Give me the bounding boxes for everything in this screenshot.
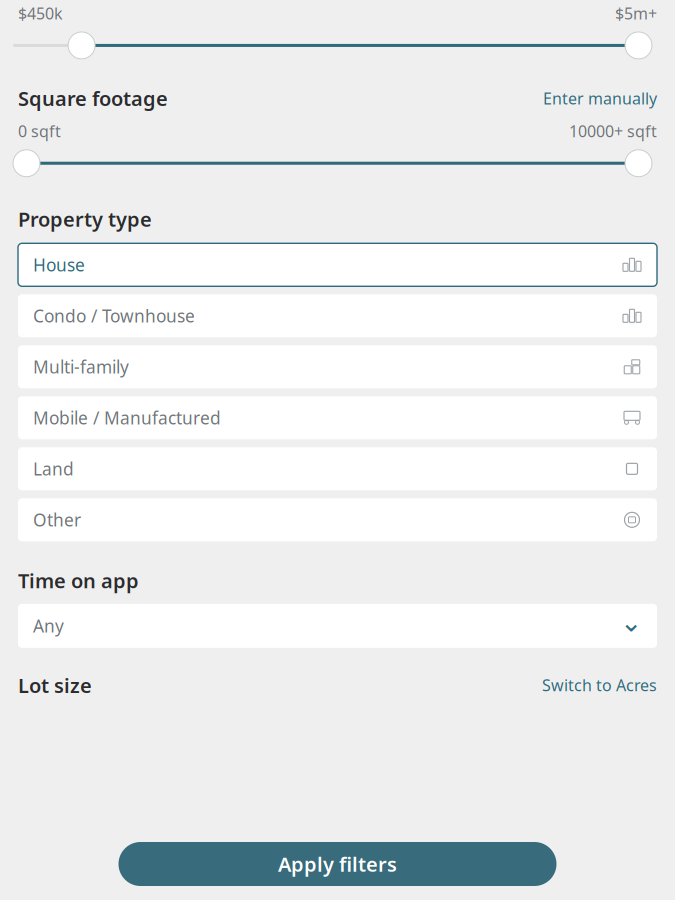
staticText: Other [33,508,81,531]
button[interactable]: Enter manually [543,88,657,109]
staticText: $5m+ [615,3,657,24]
staticText: Square footage [18,85,168,111]
button[interactable]: Mobile / Manufactured [18,396,657,439]
staticText: Any [33,614,64,637]
staticText: Multi-family [33,355,129,378]
staticText: Mobile / Manufactured [33,406,221,429]
button[interactable]: Multi-family [18,345,657,388]
button[interactable]: Maximum [625,150,652,177]
staticText: Land [33,457,74,480]
staticText: House [33,253,85,276]
staticText: Lot size [18,672,92,698]
button[interactable]: Maximum [625,32,652,59]
staticText: Apply filters [278,851,397,877]
button[interactable]: Condo / Townhouse [18,294,657,337]
staticText: Condo / Townhouse [33,304,195,327]
staticText: ⌄ [620,607,642,637]
staticText: 0 sqft [18,120,61,142]
button[interactable]: Minimum [68,32,95,59]
staticText: Enter manually [543,88,657,109]
button[interactable]: House [18,243,657,286]
button[interactable]: Apply filters [118,842,556,886]
staticText: Time on app [18,567,139,594]
staticText: $450k [18,3,63,24]
staticText: 10000+ sqft [569,120,657,142]
button[interactable]: Land [18,447,657,490]
button[interactable]: Minimum [13,150,40,177]
button[interactable]: Any [18,604,657,648]
button[interactable]: Other [18,498,657,541]
staticText: Switch to Acres [542,674,657,696]
button[interactable]: Switch to Acres [542,674,657,696]
staticText: Property type [18,206,152,232]
